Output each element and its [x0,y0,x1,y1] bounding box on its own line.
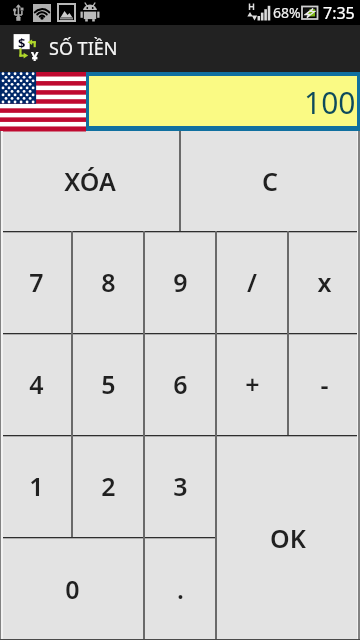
button[interactable]: . [144,537,216,640]
staticText: SỐ TIỀN [49,36,118,61]
button[interactable]: / [216,231,288,333]
staticText: 7:35 [323,2,355,24]
staticText: 7 [29,265,44,299]
button[interactable]: x [288,231,360,333]
button[interactable]: 5 [72,333,144,435]
button[interactable]: OK [216,435,360,640]
button[interactable]: 2 [72,435,144,537]
staticText: 9 [173,265,188,299]
staticText: / [247,265,257,299]
staticText: $ [18,34,26,52]
button[interactable]: C [180,131,360,231]
button[interactable]: 3 [144,435,216,537]
button[interactable]: 4 [0,333,72,435]
button[interactable]: + [216,333,288,435]
staticText: OK [270,521,306,555]
staticText: 8 [101,265,116,299]
staticText: ¥ [31,47,39,65]
staticText: XÓA [64,164,116,198]
staticText: 68% [273,3,301,22]
staticText: x [317,265,332,299]
staticText: 4 [29,367,44,401]
button[interactable]: 7 [0,231,72,333]
staticText: 3 [173,469,188,503]
button[interactable]: 100 [89,76,357,126]
staticText: 2 [101,469,116,503]
staticText: + [245,367,260,401]
staticText: - [320,367,329,401]
button[interactable]: 0 [0,537,144,640]
staticText: 1 [29,469,44,503]
staticText: 100 [304,82,356,123]
staticText: C [262,164,278,198]
staticText: 5 [101,367,116,401]
button[interactable]: - [288,333,360,435]
staticText: 0 [65,572,80,606]
button[interactable]: Select currency: US Dollar [0,72,86,131]
button[interactable]: 8 [72,231,144,333]
staticText: 6 [173,367,188,401]
button[interactable]: 1 [0,435,72,537]
button[interactable]: XÓA [0,131,180,231]
staticText: . [177,572,184,606]
button[interactable]: 9 [144,231,216,333]
button[interactable]: 6 [144,333,216,435]
